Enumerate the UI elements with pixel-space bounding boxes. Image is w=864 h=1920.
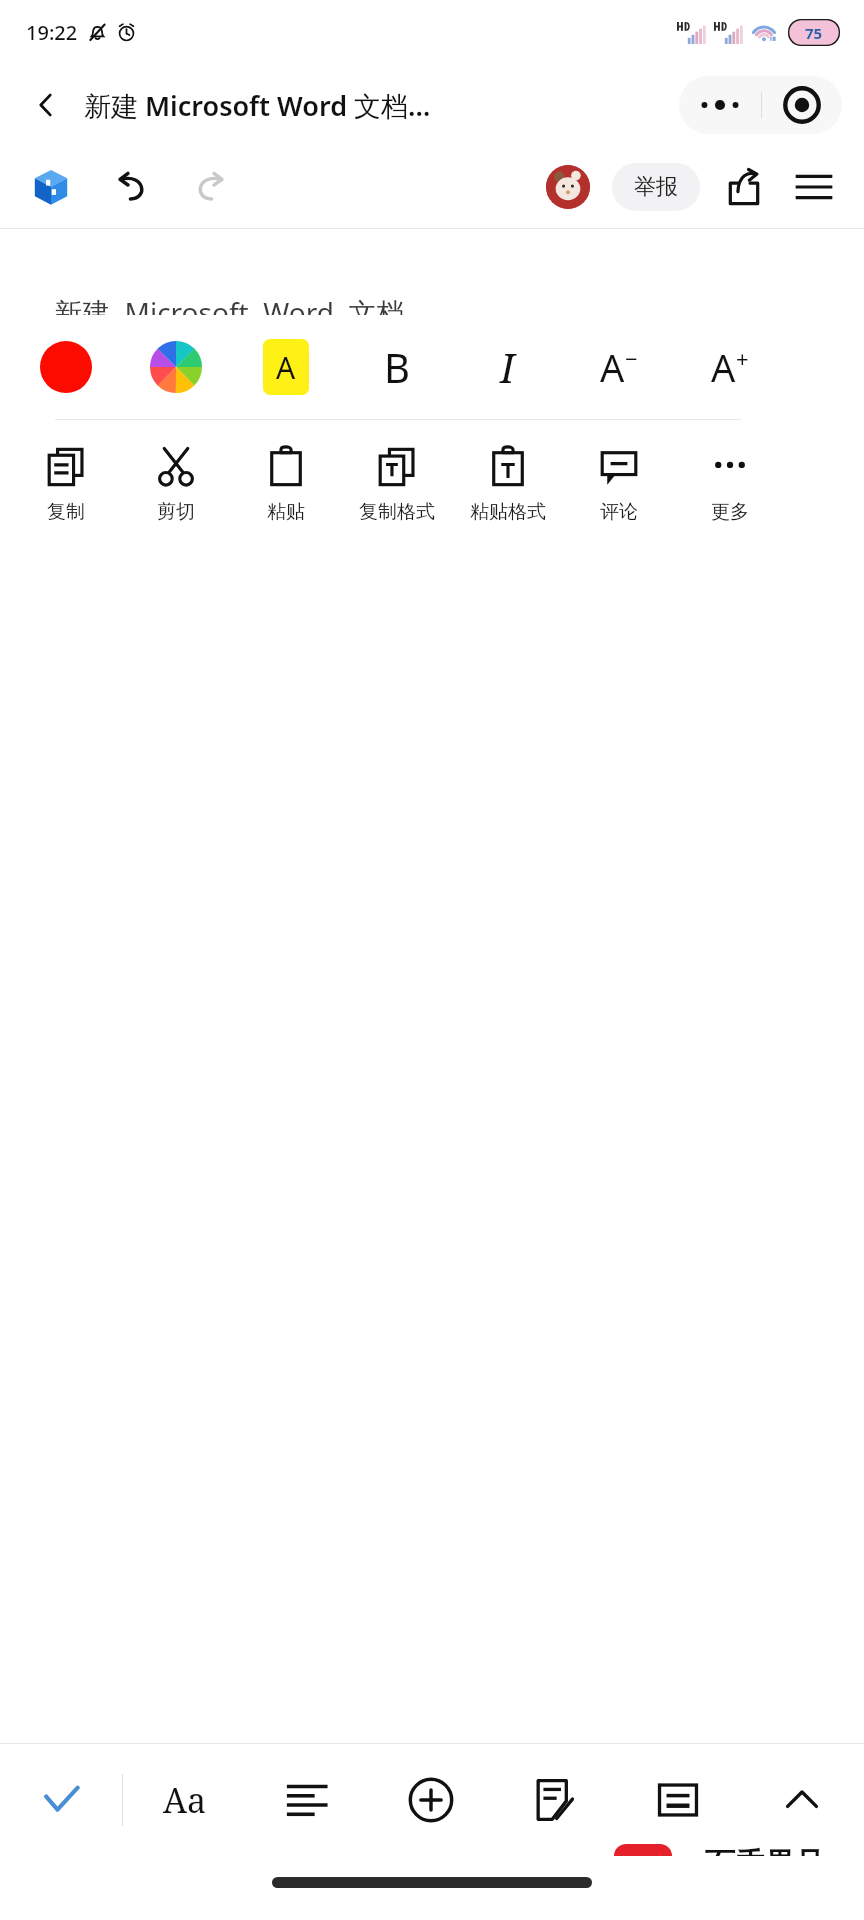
button[interactable]: Share <box>720 163 768 211</box>
button[interactable] <box>11 315 121 419</box>
button[interactable]: 剪切 <box>121 420 231 550</box>
staticText: 新建 Microsoft Word 文档… <box>84 87 431 124</box>
button[interactable]: WPS <box>28 164 74 210</box>
staticText: 复制 <box>47 500 85 524</box>
staticText: 75 <box>805 23 823 43</box>
button[interactable]: 粘贴 <box>231 420 341 550</box>
staticText: 更多 <box>711 500 749 524</box>
button[interactable]: Menu <box>790 163 838 211</box>
button[interactable]: 更多 <box>674 420 785 550</box>
staticText: 新建 Microsoft Word 文档 <box>54 293 405 331</box>
staticText: 举报 <box>634 173 678 201</box>
staticText: Aa <box>163 1777 207 1823</box>
button[interactable]: Done <box>0 1744 122 1856</box>
button[interactable]: Redo <box>186 163 234 211</box>
button[interactable]: Keyboard <box>616 1744 740 1856</box>
staticText: 评论 <box>600 500 638 524</box>
button[interactable]: 评论 <box>563 420 674 550</box>
button[interactable]: 粘贴格式 <box>452 420 563 550</box>
staticText: 粘贴格式 <box>470 500 546 524</box>
staticText: A <box>711 341 736 393</box>
button[interactable] <box>121 315 231 419</box>
staticText: B <box>384 340 410 394</box>
button[interactable]: Back <box>20 79 72 131</box>
staticText: 剪切 <box>157 500 195 524</box>
button[interactable]: 复制格式 <box>341 420 452 550</box>
button[interactable]: Close <box>762 76 842 134</box>
button[interactable]: Font <box>123 1744 246 1856</box>
button[interactable]: I <box>452 315 563 419</box>
staticText: + <box>736 343 749 373</box>
staticText: 修改文档 <box>56 345 168 380</box>
button[interactable]: Profile <box>546 165 590 209</box>
button[interactable]: Insert <box>369 1744 492 1856</box>
staticText: 19:22 <box>26 19 78 46</box>
button[interactable]: A <box>674 315 785 419</box>
button[interactable]: Review <box>492 1744 616 1856</box>
button[interactable]: More options <box>679 76 761 134</box>
staticText: A <box>276 347 296 388</box>
button[interactable]: B <box>341 315 452 419</box>
button[interactable]: Paragraph <box>246 1744 369 1856</box>
staticText: − <box>625 343 638 373</box>
staticText: 百香果号 <box>705 1845 825 1883</box>
staticText: 复制格式 <box>359 500 435 524</box>
button[interactable]: Undo <box>108 163 156 211</box>
staticText: 粘贴 <box>267 500 305 524</box>
button[interactable]: 举报 <box>612 163 700 211</box>
button[interactable]: Collapse <box>740 1744 864 1856</box>
button[interactable]: A <box>231 315 341 419</box>
button[interactable]: 复制 <box>11 420 121 550</box>
staticText: I <box>500 340 515 394</box>
button[interactable]: A <box>563 315 674 419</box>
staticText: A <box>600 341 625 393</box>
